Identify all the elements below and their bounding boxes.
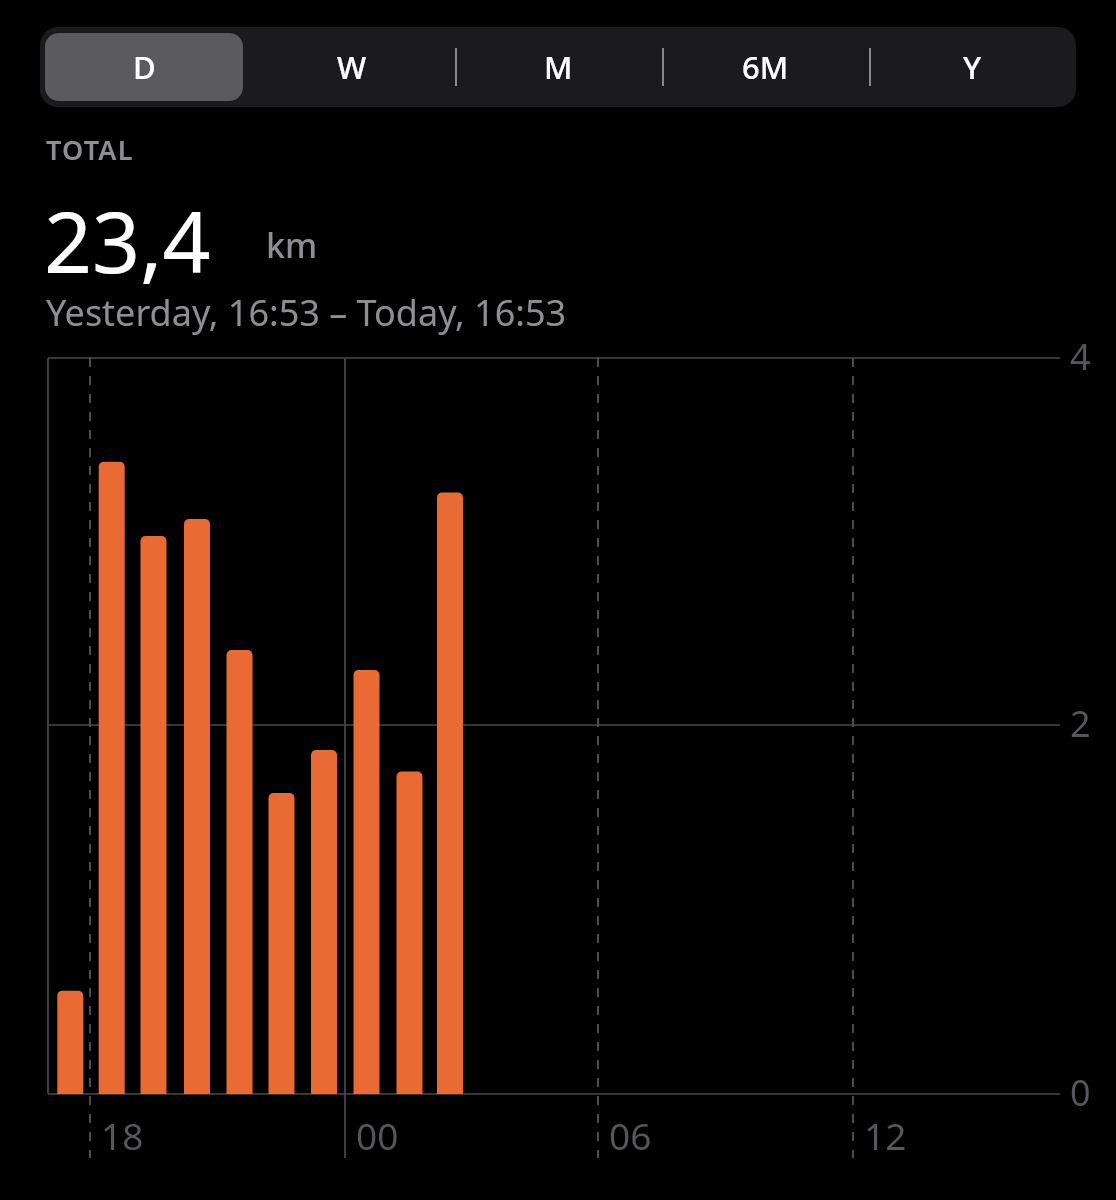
staticText: TOTAL xyxy=(46,131,134,168)
button[interactable]: 6M xyxy=(662,27,869,107)
staticText: Y xyxy=(963,46,982,88)
button[interactable]: W xyxy=(248,27,455,107)
staticText: 12 xyxy=(864,1110,907,1160)
button[interactable]: D xyxy=(40,27,248,107)
staticText: 4 xyxy=(1070,332,1091,381)
staticText: 23,4 xyxy=(44,183,211,297)
staticText: 00 xyxy=(356,1110,399,1160)
staticText: 18 xyxy=(101,1110,144,1160)
staticText: 6M xyxy=(742,46,789,88)
staticText: 2 xyxy=(1070,699,1091,748)
button[interactable]: Y xyxy=(869,27,1076,107)
staticText: M xyxy=(544,46,573,88)
staticText: km xyxy=(266,222,318,268)
button[interactable]: M xyxy=(455,27,662,107)
staticText: D xyxy=(133,46,156,88)
staticText: W xyxy=(337,46,367,88)
staticText: 0 xyxy=(1070,1068,1091,1117)
staticText: Yesterday, 16:53 – Today, 16:53 xyxy=(46,288,567,337)
staticText: 06 xyxy=(609,1110,652,1160)
